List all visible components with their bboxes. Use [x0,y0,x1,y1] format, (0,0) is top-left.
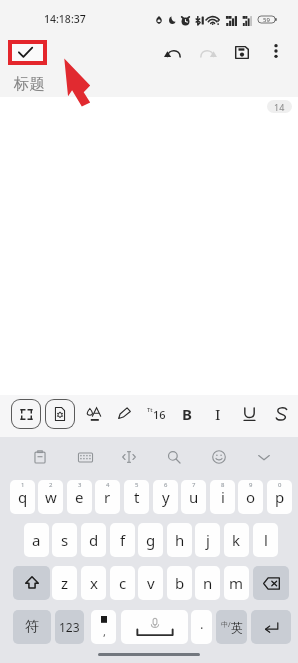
button[interactable]: Space [121,610,188,644]
button[interactable]: Backspace [253,566,289,600]
staticText: 标题 [14,74,45,94]
button[interactable]: Strikethrough [270,403,292,425]
button[interactable]: c [110,566,135,600]
button[interactable]: j [195,523,220,557]
button[interactable]: o [238,480,263,514]
staticText: b [175,573,185,593]
staticText: m [229,573,244,593]
staticText: g [146,530,156,550]
button[interactable]: Highlighter [113,403,135,425]
button[interactable]: k [224,523,249,557]
staticText: r [104,487,111,507]
staticText: a [32,530,41,550]
staticText: w [45,487,57,507]
button[interactable]: B [176,403,198,425]
staticText: f [120,530,126,550]
staticText: y [162,487,170,507]
staticText: B [182,404,192,424]
button[interactable]: f [110,523,135,557]
staticText: x [90,573,98,593]
staticText: o [246,487,256,507]
button[interactable]: w [38,480,63,514]
staticText: s [61,530,69,550]
button[interactable]: Keyboard layout [71,443,99,471]
button[interactable]: 符 [13,610,51,644]
button[interactable]: More options [265,40,287,62]
staticText: 14:18:37 [44,12,86,26]
button[interactable]: z [52,566,77,600]
button[interactable]: 123 [55,610,84,644]
staticText: 123 [59,619,80,635]
staticText: 9 [249,481,253,489]
button[interactable]: t [124,480,149,514]
staticText: 14 [274,101,285,113]
staticText: 2 [49,481,53,489]
staticText: 0 [278,481,282,489]
button[interactable]: p [267,480,292,514]
button[interactable]: Redo [196,40,220,64]
button[interactable]: Fullscreen [12,400,40,428]
button[interactable]: Hide keyboard [250,443,278,471]
staticText: q [18,487,28,507]
staticText: 5 [135,481,139,489]
staticText: u [189,487,199,507]
staticText: 7 [192,481,196,489]
button[interactable]: b [167,566,192,600]
button[interactable]: d [81,523,106,557]
button[interactable]: m [224,566,249,600]
staticText: 1 [21,481,25,489]
button[interactable]: y [153,480,178,514]
button[interactable]: Text color [83,403,105,425]
staticText: n [203,573,213,593]
staticText: z [61,573,69,593]
staticText: 59 [263,16,270,24]
staticText: k [232,530,241,550]
button[interactable]: I [207,403,229,425]
button[interactable]: u [181,480,206,514]
button[interactable]: Emoji [205,443,233,471]
staticText: l [264,530,268,550]
staticText: 4 [106,481,110,489]
button[interactable]: r [95,480,120,514]
staticText: j [206,530,210,550]
button[interactable]: n [195,566,220,600]
staticText: 英 [231,620,243,635]
button[interactable]: s [52,523,77,557]
button[interactable]: l [253,523,278,557]
staticText: 6 [164,481,168,489]
staticText: I [215,404,221,424]
button[interactable]: , [91,610,116,644]
button[interactable]: . [191,610,212,644]
staticText: i [221,487,225,507]
button[interactable]: Move cursor [115,443,143,471]
button[interactable]: Undo [160,40,184,64]
button[interactable]: Underline [238,403,260,425]
button[interactable]: Done [12,44,43,61]
staticText: 3 [78,481,82,489]
button[interactable]: Clipboard [26,443,54,471]
staticText: t [134,487,140,507]
staticText: h [175,530,185,550]
staticText: , [103,624,106,639]
button[interactable]: a [24,523,49,557]
staticText: 8 [221,481,225,489]
button[interactable]: q [10,480,35,514]
staticText: d [89,530,99,550]
button[interactable]: Shift [13,566,50,600]
staticText: v [147,573,155,593]
button[interactable]: Search [160,443,188,471]
button[interactable]: Enter [251,610,291,644]
staticText: 16 [153,407,166,422]
button[interactable]: Template [46,400,74,428]
button[interactable]: x [81,566,106,600]
button[interactable]: g [138,523,163,557]
button[interactable]: Font size [145,403,167,425]
button[interactable]: 中/ [216,610,247,644]
staticText: c [119,573,127,593]
staticText: p [275,487,285,507]
button[interactable]: i [210,480,235,514]
button[interactable]: v [138,566,163,600]
button[interactable]: e [67,480,92,514]
button[interactable]: Save [230,40,254,64]
button[interactable]: h [167,523,192,557]
